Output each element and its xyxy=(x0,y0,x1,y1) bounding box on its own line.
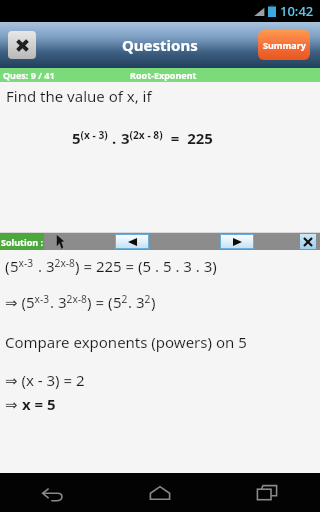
staticText: 5x-3 xyxy=(26,292,50,312)
staticText: 10:42 xyxy=(280,2,314,20)
staticText: Find the value of x, if xyxy=(6,86,152,106)
button[interactable]: Previous xyxy=(116,235,148,248)
staticText: ⇒ ( xyxy=(5,292,26,312)
staticText: 3(2x - 8) xyxy=(121,128,163,148)
staticText: ⇒ xyxy=(5,394,22,414)
staticText: Root-Exponent xyxy=(130,69,197,81)
staticText: ( xyxy=(5,256,10,276)
staticText: ) = ( xyxy=(87,292,113,312)
button[interactable]: Next xyxy=(221,235,253,248)
button[interactable]: Summary xyxy=(258,30,310,60)
staticText: Summary xyxy=(263,39,306,51)
staticText: Solution : xyxy=(1,236,44,248)
staticText: . xyxy=(108,128,121,148)
button[interactable]: Home xyxy=(137,473,183,512)
staticText: 32 xyxy=(136,292,151,312)
staticText: Compare exponents (powers) on 5 xyxy=(5,332,247,352)
staticText: = 225 xyxy=(163,128,213,148)
staticText: 5(x - 3) xyxy=(72,128,108,148)
staticText: x = 5 xyxy=(22,394,56,414)
staticText: . xyxy=(50,292,58,312)
button[interactable]: Recents xyxy=(244,473,290,512)
staticText: 52 xyxy=(113,292,128,312)
staticText: ⇒ (x - 3) = 2 xyxy=(5,370,85,390)
button[interactable]: Back xyxy=(30,473,76,512)
staticText: . xyxy=(34,256,46,276)
staticText: Ques: 9 / 41 xyxy=(3,69,55,81)
staticText: 32x-8 xyxy=(46,256,75,276)
button[interactable]: Close xyxy=(8,31,36,59)
staticText: . xyxy=(128,292,136,312)
staticText: ) = 225 = (5 . 5 . 3 . 3) xyxy=(75,256,217,276)
staticText: 5x-3 xyxy=(10,256,34,276)
staticText: Questions xyxy=(122,35,198,55)
button[interactable]: Close solution xyxy=(300,234,316,249)
staticText: 32x-8 xyxy=(58,292,87,312)
staticText: ) xyxy=(151,292,156,312)
